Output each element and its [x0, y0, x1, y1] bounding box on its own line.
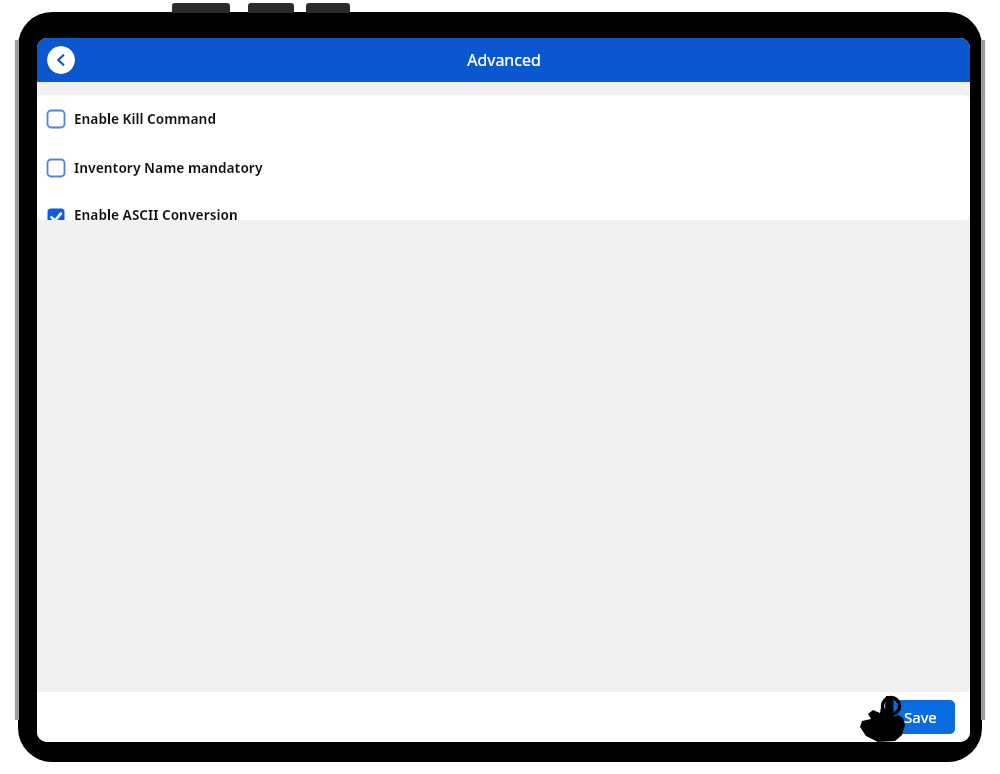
- staticText: Advanced: [467, 49, 541, 71]
- staticText: Enable ASCII Conversion: [74, 206, 238, 220]
- button[interactable]: Enable Kill Command: [37, 108, 970, 130]
- staticText: Enable Kill Command: [74, 110, 216, 128]
- button[interactable]: Inventory Name mandatory: [37, 157, 970, 179]
- button[interactable]: Save: [885, 700, 955, 734]
- button[interactable]: Back: [47, 46, 75, 74]
- button[interactable]: Enable ASCII Conversion: [37, 206, 970, 220]
- staticText: Save: [904, 707, 937, 727]
- staticText: Inventory Name mandatory: [74, 159, 263, 177]
